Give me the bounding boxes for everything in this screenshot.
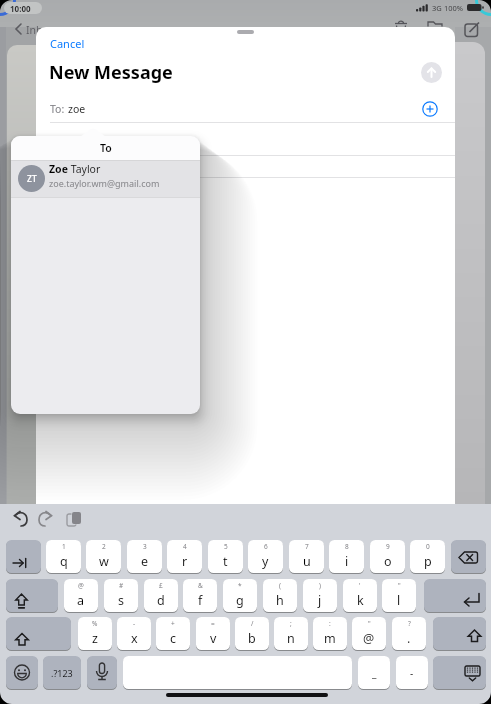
staticText: zoe.taylor.wm@gmail.com: [49, 177, 160, 189]
staticText: t: [223, 553, 228, 570]
staticText: s: [118, 592, 124, 609]
staticText: To: [100, 141, 112, 155]
staticText: :: [329, 619, 331, 628]
staticText: &: [198, 581, 203, 590]
staticText: c: [170, 630, 177, 647]
staticText: ": [398, 581, 401, 590]
staticText: #: [119, 581, 124, 590]
staticText: .?123: [51, 667, 73, 679]
staticText: ?: [408, 619, 411, 628]
staticText: Zoe Taylor: [49, 162, 101, 176]
staticText: v: [210, 630, 217, 647]
staticText: =: [211, 619, 215, 628]
staticText: 5: [224, 542, 228, 551]
staticText: ;: [290, 619, 292, 628]
staticText: +: [171, 619, 175, 628]
staticText: @: [363, 630, 375, 647]
staticText: d: [157, 592, 165, 609]
staticText: x: [131, 630, 138, 647]
staticText: -: [410, 666, 414, 680]
staticText: .: [407, 630, 411, 647]
staticText: 4: [183, 542, 187, 551]
staticText: New Message: [49, 60, 173, 85]
staticText: r: [182, 553, 188, 570]
staticText: n: [287, 630, 295, 647]
staticText: Inb: [26, 23, 43, 37]
staticText: To:: [50, 102, 65, 116]
staticText: /: [251, 619, 254, 628]
staticText: 1: [62, 542, 66, 551]
staticText: h: [276, 592, 284, 609]
staticText: l: [397, 592, 401, 609]
staticText: 2: [102, 542, 106, 551]
staticText: 8: [345, 542, 349, 551]
staticText: 3G: [432, 3, 442, 13]
staticText: b: [248, 630, 256, 647]
staticText: o: [384, 553, 392, 570]
staticText: ': [359, 581, 361, 590]
staticText: a: [77, 592, 85, 609]
staticText: _: [372, 666, 377, 680]
staticText: p: [424, 553, 432, 570]
staticText: y: [262, 553, 269, 570]
staticText: q: [60, 553, 68, 570]
staticText: Cancel: [50, 36, 85, 51]
staticText: Cc:: [50, 134, 65, 148]
staticText: j: [318, 592, 322, 609]
staticText: zoe: [68, 102, 86, 116]
staticText: @: [78, 581, 84, 590]
staticText: (: [279, 581, 281, 590]
staticText: 3: [143, 542, 147, 551]
staticText: *: [238, 581, 242, 590]
staticText: £: [159, 581, 163, 590]
staticText: 10:00: [10, 3, 31, 14]
staticText: ": [368, 619, 371, 628]
staticText: ZT: [27, 173, 37, 185]
staticText: z: [92, 630, 98, 647]
staticText: %: [92, 619, 98, 628]
staticText: 9: [386, 542, 390, 551]
staticText: e: [141, 553, 149, 570]
staticText: g: [236, 592, 244, 609]
staticText: 6: [264, 542, 268, 551]
staticText: i: [345, 553, 349, 570]
staticText: 0: [426, 542, 430, 551]
staticText: w: [99, 553, 109, 570]
staticText: -: [133, 619, 136, 628]
staticText: u: [303, 553, 311, 570]
staticText: ): [319, 581, 321, 590]
staticText: 7: [305, 542, 309, 551]
staticText: 100%: [444, 3, 464, 13]
staticText: m: [324, 630, 336, 647]
staticText: f: [198, 592, 203, 609]
staticText: k: [357, 592, 364, 609]
